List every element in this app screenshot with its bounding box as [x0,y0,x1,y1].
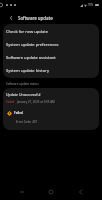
staticText: Software update assistant [6,55,56,61]
button[interactable]: System update history [3,64,99,77]
button[interactable]: Check for new update [3,25,99,38]
staticText: Failed [6,100,15,104]
button[interactable]: Home [44,185,58,199]
staticText: January 21, 2025 at 9:05 AM [17,100,55,104]
button[interactable]: Navigate up [5,12,16,23]
button[interactable]: Back [73,185,87,199]
staticText: System update history [6,68,49,74]
staticText: Software update status [6,82,39,86]
staticText: Error Code: 407 [16,120,38,124]
staticText: Check for new update [6,29,48,35]
staticText: System update preferences [6,42,59,48]
staticText: Update Unsuccessful [6,92,41,97]
staticText: Failed [14,111,23,115]
button[interactable]: System update preferences [3,38,99,51]
button[interactable]: Software update assistant [3,51,99,64]
staticText: 70% [88,3,94,7]
staticText: Software update [18,15,53,21]
button[interactable]: Recent apps [15,185,29,199]
